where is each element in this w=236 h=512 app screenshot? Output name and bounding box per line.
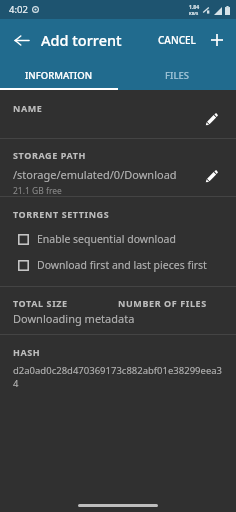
staticText: TORRENT SETTINGS <box>13 208 110 220</box>
staticText: STORAGE PATH <box>13 149 86 161</box>
button[interactable]: CANCEL <box>152 27 202 53</box>
button[interactable]: Edit <box>198 163 224 189</box>
button[interactable]: Edit <box>198 106 224 132</box>
staticText: FILES <box>165 69 189 82</box>
staticText: 21.1 GB free <box>13 185 62 196</box>
staticText: Add torrent <box>41 30 122 50</box>
staticText: TOTAL SIZE <box>13 297 68 309</box>
staticText: Enable sequential download <box>37 232 176 246</box>
button[interactable]: Back <box>6 25 36 55</box>
button[interactable]: FILES <box>118 61 236 90</box>
staticText: 1.84 <box>189 4 199 11</box>
button[interactable]: STORAGE PATH <box>0 139 236 196</box>
button[interactable]: Download first and last pieces first <box>0 255 236 275</box>
staticText: /storage/emulated/0/Download <box>13 167 177 182</box>
staticText: NUMBER OF FILES <box>118 297 207 309</box>
button[interactable]: INFORMATION <box>0 61 118 90</box>
button[interactable]: Enable sequential download <box>0 229 236 249</box>
staticText: KB/S <box>189 11 199 16</box>
button[interactable]: NAME <box>0 90 236 138</box>
staticText: 4:02 <box>9 3 28 16</box>
staticText: HASH <box>13 346 41 358</box>
staticText: Downloading metadata <box>13 311 135 326</box>
staticText: CANCEL <box>158 33 196 47</box>
staticText: Download first and last pieces first <box>37 258 207 272</box>
button[interactable]: Add <box>202 25 232 55</box>
staticText: INFORMATION <box>25 69 93 82</box>
staticText: d2a0ad0c28d470369173c882abf01e38299eea34 <box>13 364 226 390</box>
staticText: NAME <box>13 102 43 114</box>
